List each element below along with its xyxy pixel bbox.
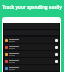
button[interactable] (4, 65, 59, 71)
staticText: Track your spending easily (2, 4, 62, 10)
button[interactable] (4, 44, 59, 50)
button[interactable] (4, 37, 59, 43)
button[interactable] (4, 51, 59, 57)
button[interactable] (4, 58, 59, 64)
